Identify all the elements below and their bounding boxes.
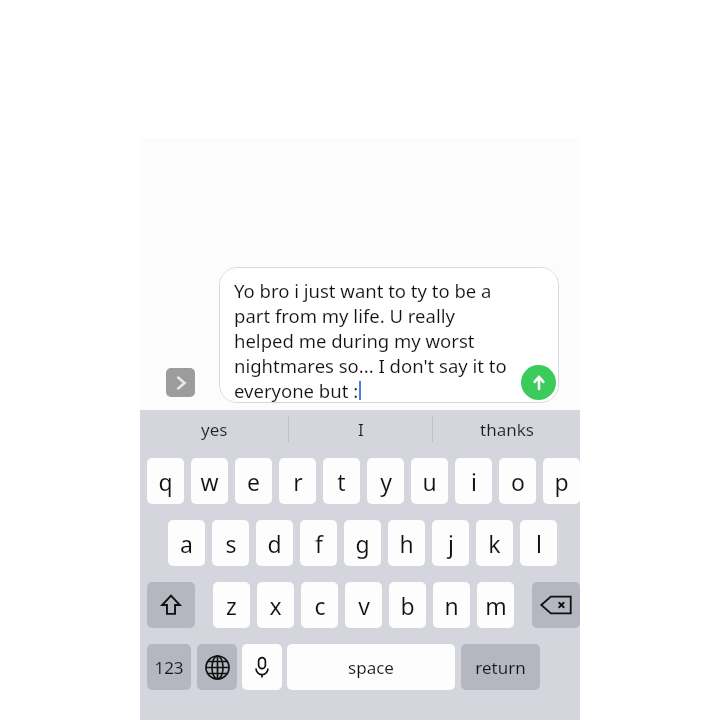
staticText: I xyxy=(358,418,364,441)
staticText: 123 xyxy=(154,656,184,679)
staticText: everyone but : xyxy=(234,378,359,403)
staticText: yes xyxy=(201,418,228,441)
button[interactable]: e xyxy=(235,458,272,504)
staticText: a xyxy=(180,528,193,559)
staticText: space xyxy=(348,656,394,679)
staticText: helped me during my worst xyxy=(234,328,475,353)
button[interactable]: thanks xyxy=(433,410,580,448)
button[interactable]: i xyxy=(455,458,492,504)
staticText: j xyxy=(448,528,454,559)
staticText: thanks xyxy=(480,418,534,441)
staticText: g xyxy=(355,528,370,559)
button[interactable]: v xyxy=(345,582,382,628)
button[interactable]: h xyxy=(388,520,425,566)
staticText: e xyxy=(247,466,260,497)
button[interactable]: Backspace xyxy=(532,582,580,628)
button[interactable]: f xyxy=(300,520,337,566)
staticText: part from my life. U really xyxy=(234,303,455,328)
button[interactable]: q xyxy=(147,458,184,504)
button[interactable]: o xyxy=(499,458,536,504)
staticText: s xyxy=(225,528,237,559)
button[interactable]: x xyxy=(257,582,294,628)
staticText: m xyxy=(485,590,507,621)
staticText: i xyxy=(471,466,477,497)
staticText: l xyxy=(536,528,542,559)
staticText: o xyxy=(511,466,525,497)
staticText: n xyxy=(444,590,459,621)
staticText: h xyxy=(399,528,414,559)
button[interactable]: m xyxy=(477,582,514,628)
button[interactable]: p xyxy=(543,458,580,504)
staticText: z xyxy=(226,590,237,621)
staticText: q xyxy=(158,466,173,497)
button[interactable]: a xyxy=(168,520,205,566)
staticText: r xyxy=(293,466,303,497)
button[interactable]: Yo bro i just want to ty to be a xyxy=(219,267,559,403)
button[interactable]: Shift xyxy=(147,582,195,628)
button[interactable]: Switch keyboard language xyxy=(197,644,237,690)
staticText: y xyxy=(380,466,392,497)
staticText: x xyxy=(269,590,282,621)
button[interactable]: I xyxy=(289,410,432,448)
staticText: return xyxy=(475,656,526,679)
button[interactable]: return xyxy=(461,644,540,690)
button[interactable]: s xyxy=(212,520,249,566)
staticText: v xyxy=(358,590,370,621)
button[interactable]: space xyxy=(287,644,455,690)
staticText: c xyxy=(314,590,326,621)
button[interactable]: yes xyxy=(140,410,288,448)
staticText: b xyxy=(400,590,415,621)
staticText: f xyxy=(315,528,323,559)
staticText: Yo bro i just want to ty to be a xyxy=(234,278,492,303)
button[interactable]: z xyxy=(213,582,250,628)
staticText: d xyxy=(267,528,282,559)
button[interactable]: k xyxy=(476,520,513,566)
button[interactable]: y xyxy=(367,458,404,504)
staticText: nightmares so... I don't say it to xyxy=(234,353,507,378)
button[interactable]: l xyxy=(520,520,557,566)
button[interactable]: b xyxy=(389,582,426,628)
button[interactable]: Dictate xyxy=(242,644,282,690)
button[interactable]: c xyxy=(301,582,338,628)
button[interactable]: r xyxy=(279,458,316,504)
button[interactable]: n xyxy=(433,582,470,628)
button[interactable]: 123 xyxy=(147,644,191,690)
button[interactable]: Send xyxy=(521,365,556,400)
staticText: u xyxy=(422,466,437,497)
staticText: p xyxy=(554,466,569,497)
button[interactable]: Expand options xyxy=(166,368,195,397)
button[interactable]: g xyxy=(344,520,381,566)
button[interactable]: t xyxy=(323,458,360,504)
staticText: w xyxy=(200,466,219,497)
button[interactable]: w xyxy=(191,458,228,504)
staticText: k xyxy=(488,528,501,559)
button[interactable]: u xyxy=(411,458,448,504)
button[interactable]: d xyxy=(256,520,293,566)
button[interactable]: j xyxy=(432,520,469,566)
staticText: t xyxy=(337,466,346,497)
